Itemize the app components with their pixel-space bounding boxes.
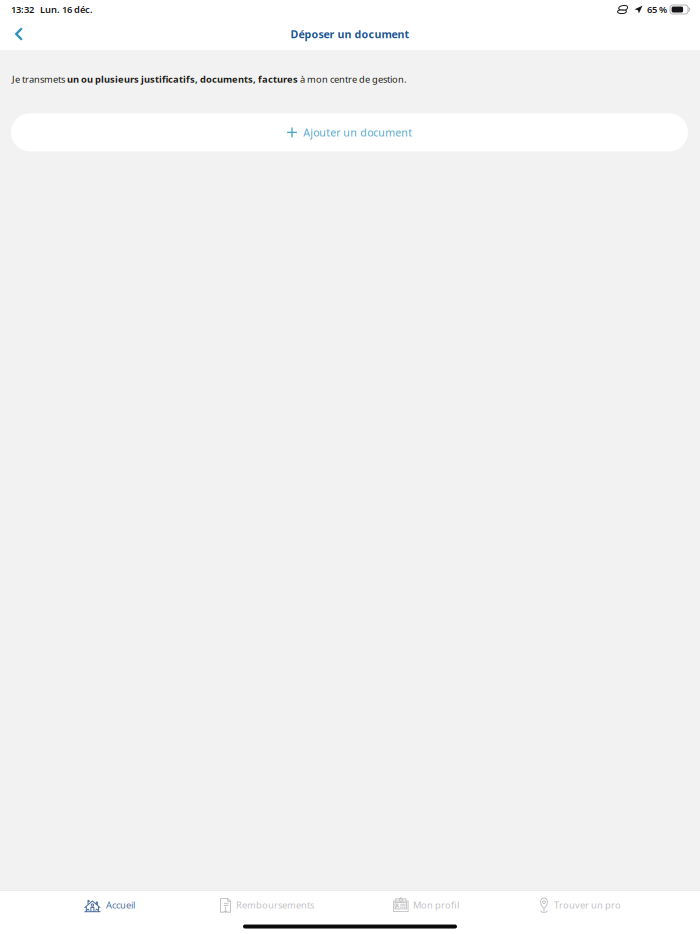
staticText: Lun. 16 déc.	[40, 3, 93, 16]
button[interactable]: Remboursements	[220, 891, 314, 919]
staticText: Accueil	[106, 899, 135, 911]
staticText: 13:32	[11, 3, 34, 16]
staticText: Mon profil	[413, 899, 459, 911]
button[interactable]: Trouver un pro	[539, 890, 621, 919]
button[interactable]: Ajouter un document	[11, 113, 688, 151]
staticText: Remboursements	[236, 899, 314, 911]
staticText: Ajouter un document	[303, 125, 412, 139]
staticText: 65 %	[647, 3, 667, 16]
staticText: Trouver un pro	[554, 899, 621, 911]
button[interactable]: Mon profil	[393, 891, 459, 919]
staticText: Je transmets un ou plusieurs justificati…	[12, 73, 407, 85]
button[interactable]: Accueil	[84, 891, 135, 919]
button[interactable]: Retour	[0, 22, 37, 46]
staticText: Déposer un document	[290, 27, 409, 41]
